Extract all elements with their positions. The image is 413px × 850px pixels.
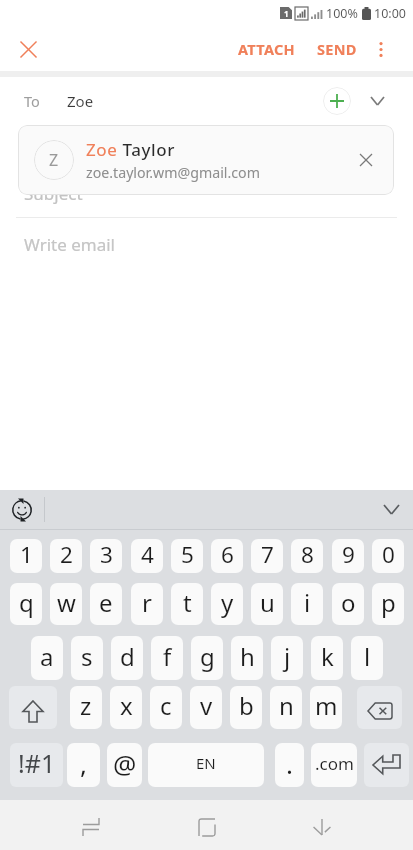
staticText: SEND	[317, 39, 357, 59]
staticText: Zoe	[67, 91, 94, 111]
staticText: 7	[261, 539, 274, 570]
button[interactable]: r	[131, 583, 163, 625]
staticText: d	[120, 640, 135, 673]
button[interactable]: ATTACH	[227, 29, 306, 69]
staticText: l	[364, 640, 371, 673]
button[interactable]: i	[291, 583, 323, 625]
button[interactable]: .	[275, 743, 304, 787]
staticText: 1	[20, 539, 33, 570]
staticText: Z	[49, 149, 59, 171]
staticText: n	[279, 689, 294, 722]
button[interactable]: h	[231, 636, 263, 680]
button[interactable]: 6	[211, 539, 243, 573]
button[interactable]: 7	[251, 539, 283, 573]
button[interactable]: a	[31, 636, 63, 680]
button[interactable]: Close	[12, 33, 44, 65]
staticText: @	[113, 746, 137, 781]
staticText: 100%	[326, 5, 358, 22]
button[interactable]: v	[190, 686, 222, 729]
staticText: .	[286, 746, 293, 781]
staticText: q	[19, 586, 34, 619]
staticText: t	[183, 586, 192, 619]
staticText: c	[160, 689, 172, 722]
staticText: EN	[196, 753, 216, 773]
button[interactable]: Expand recipients	[363, 87, 391, 115]
button[interactable]: Enter	[364, 743, 409, 787]
button[interactable]: 0	[372, 539, 404, 573]
button[interactable]: ,	[67, 743, 100, 787]
button[interactable]: b	[230, 686, 262, 729]
button[interactable]: 1	[10, 539, 42, 573]
staticText: w	[57, 586, 76, 619]
button[interactable]: !#1	[10, 743, 63, 787]
button[interactable]: z	[70, 686, 102, 729]
button[interactable]: q	[10, 583, 42, 625]
staticText: m	[315, 689, 338, 722]
button[interactable]: EN	[148, 743, 264, 787]
staticText: a	[40, 640, 54, 673]
button[interactable]: 3	[90, 539, 122, 573]
button[interactable]: 4	[131, 539, 163, 573]
staticText: .com	[315, 752, 354, 775]
button[interactable]: u	[251, 583, 283, 625]
staticText: y	[221, 586, 234, 619]
button[interactable]: Hide keyboard	[369, 490, 413, 529]
button[interactable]: Recents	[69, 802, 113, 850]
button[interactable]: 8	[291, 539, 323, 573]
button[interactable]: m	[310, 686, 342, 729]
button[interactable]: Emoji	[0, 490, 44, 529]
button[interactable]: n	[270, 686, 302, 729]
staticText: u	[260, 586, 275, 619]
button[interactable]: y	[211, 583, 243, 625]
staticText: z	[80, 689, 92, 722]
button[interactable]: 2	[50, 539, 82, 573]
button[interactable]: Subject	[24, 177, 413, 209]
button[interactable]: g	[191, 636, 223, 680]
button[interactable]: d	[111, 636, 143, 680]
button[interactable]: Back	[300, 802, 344, 850]
button[interactable]: e	[90, 583, 122, 625]
button[interactable]: Backspace	[357, 686, 402, 729]
staticText: !#1	[18, 746, 56, 780]
button[interactable]: 5	[171, 539, 203, 573]
button[interactable]: t	[171, 583, 203, 625]
staticText: h	[240, 640, 255, 673]
button[interactable]: Shift	[9, 686, 57, 729]
staticText: i	[304, 586, 311, 619]
staticText: 6	[221, 539, 234, 570]
staticText: 2	[60, 539, 73, 570]
staticText: 5	[181, 539, 194, 570]
button[interactable]: j	[271, 636, 303, 680]
staticText: e	[99, 586, 113, 619]
staticText: 1	[284, 8, 289, 19]
staticText: Subject	[24, 182, 83, 205]
staticText: ,	[80, 746, 87, 781]
button[interactable]: Write email	[24, 228, 413, 260]
button[interactable]: Z	[18, 125, 394, 195]
button[interactable]: More options	[363, 31, 399, 67]
staticText: ATTACH	[238, 39, 295, 59]
button[interactable]: Remove recipient	[346, 140, 386, 180]
staticText: 8	[301, 539, 314, 570]
button[interactable]: x	[110, 686, 142, 729]
staticText: j	[284, 640, 291, 673]
staticText: Write email	[24, 233, 115, 256]
button[interactable]: k	[311, 636, 343, 680]
button[interactable]: w	[50, 583, 82, 625]
button[interactable]: f	[151, 636, 183, 680]
button[interactable]: Home	[185, 802, 229, 850]
button[interactable]: @	[107, 743, 142, 787]
button[interactable]: c	[150, 686, 182, 729]
staticText: To	[24, 91, 40, 111]
button[interactable]: o	[332, 583, 364, 625]
button[interactable]: .com	[311, 743, 357, 787]
staticText: 3	[100, 539, 113, 570]
button[interactable]: Add recipient	[323, 87, 351, 115]
button[interactable]: s	[71, 636, 103, 680]
button[interactable]: p	[372, 583, 404, 625]
button[interactable]: l	[351, 636, 383, 680]
staticText: 4	[141, 539, 154, 570]
staticText: f	[163, 640, 172, 673]
button[interactable]: SEND	[306, 29, 363, 69]
button[interactable]: 9	[332, 539, 364, 573]
